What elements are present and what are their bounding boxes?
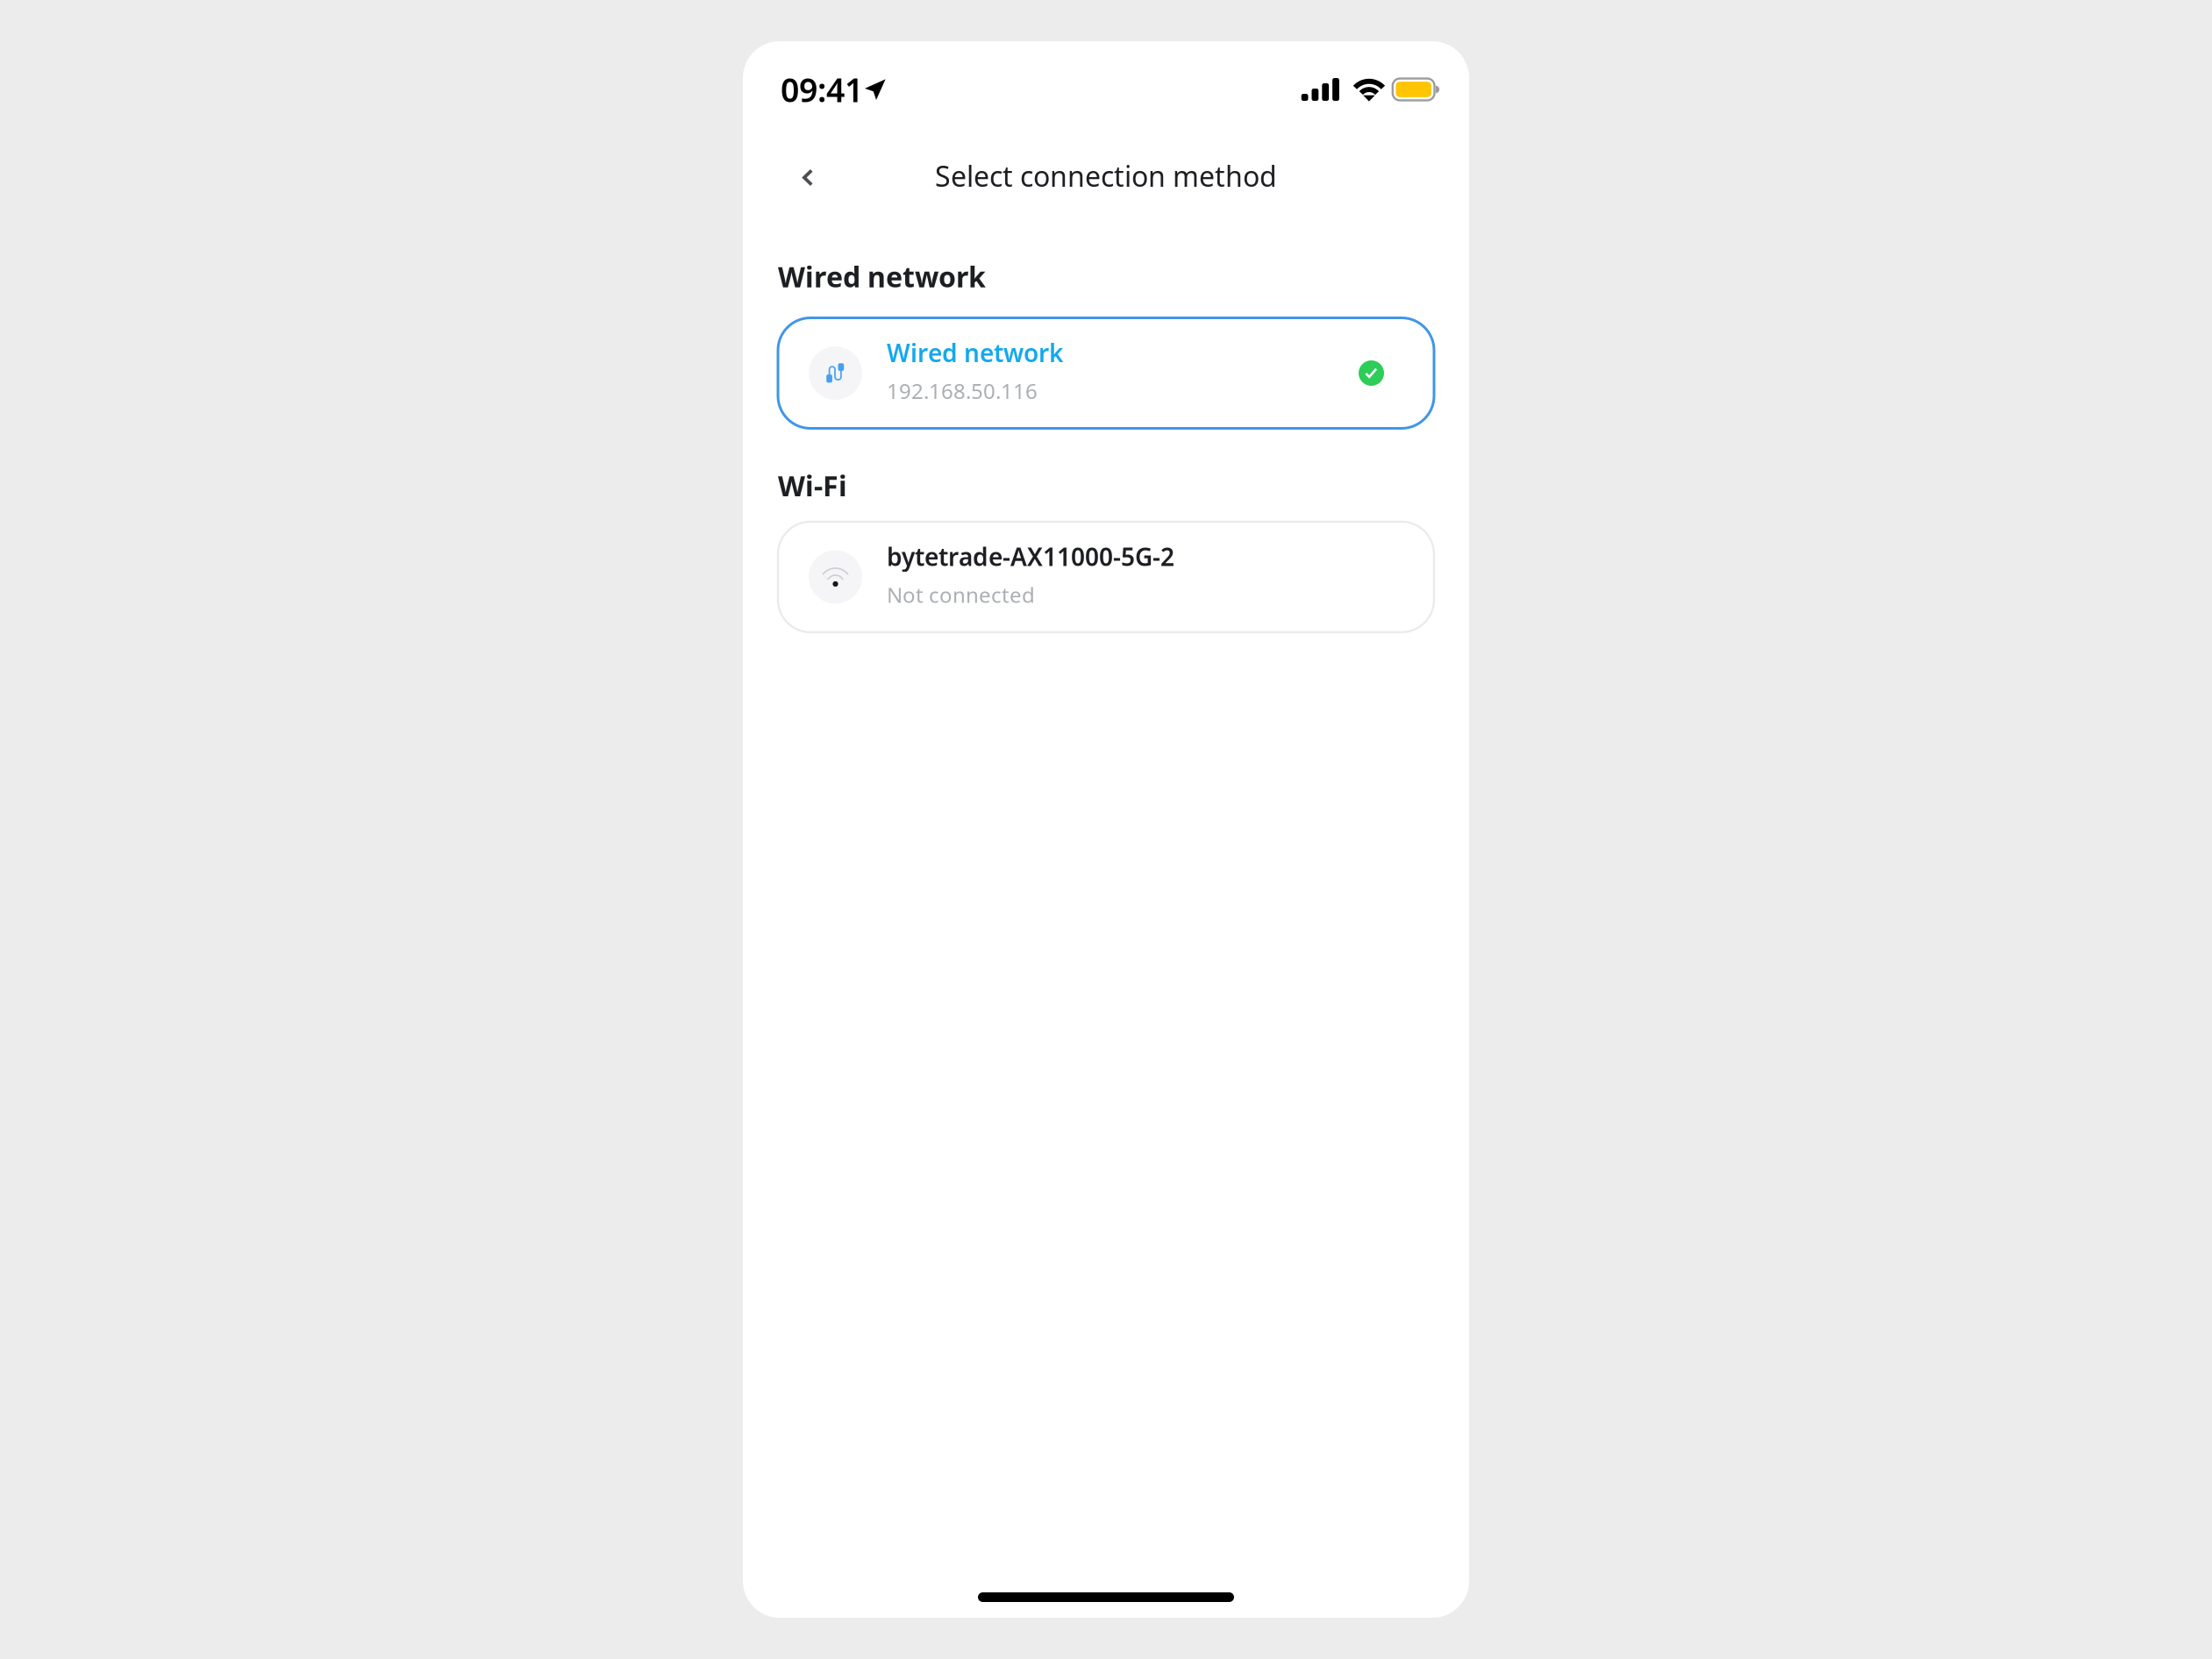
staticText: Wired network xyxy=(778,258,986,295)
button[interactable]: bytetrade-AX11000-5G-2 xyxy=(778,522,1434,632)
staticText: Not connected xyxy=(887,581,1035,609)
staticText: Wi-Fi xyxy=(778,467,847,504)
staticText: 09:41 xyxy=(781,68,863,111)
staticText: 192.168.50.116 xyxy=(887,377,1038,405)
staticText: bytetrade-AX11000-5G-2 xyxy=(887,540,1174,573)
staticText: Select connection method xyxy=(935,157,1277,194)
button[interactable]: Back xyxy=(764,138,845,214)
button[interactable]: Wired network xyxy=(778,318,1434,428)
staticText: Wired network xyxy=(887,336,1063,369)
